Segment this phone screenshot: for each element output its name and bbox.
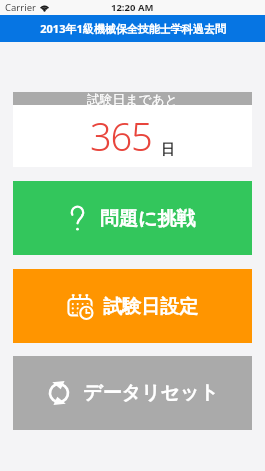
staticText: データリセット	[83, 381, 219, 405]
button[interactable]: Set exam date	[13, 269, 252, 343]
staticText: 2013年1級機械保全技能士学科過去問	[40, 21, 226, 36]
staticText: 試験日まであと	[87, 92, 178, 105]
button[interactable]: Challenge questions	[13, 181, 252, 255]
staticText: 日	[161, 141, 175, 159]
button[interactable]: Reset data	[13, 356, 252, 430]
other: Challenge questions	[69, 206, 86, 231]
staticText: 365	[90, 110, 152, 162]
staticText: 12:20 AM	[111, 1, 154, 14]
staticText: 試験日設定	[103, 295, 198, 319]
other: Set exam date	[67, 294, 93, 319]
staticText: 問題に挑戦	[100, 207, 196, 231]
other: Reset data	[47, 380, 71, 406]
staticText: Carrier	[5, 1, 36, 14]
